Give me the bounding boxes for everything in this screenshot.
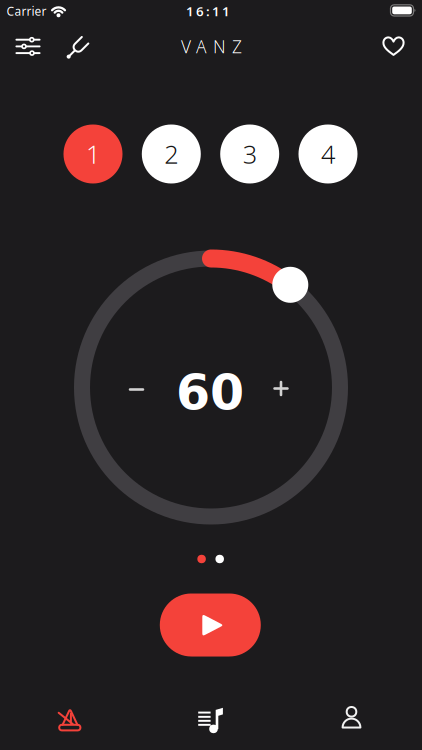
staticText: 1 <box>86 137 100 171</box>
button[interactable]: Songs <box>196 705 224 733</box>
staticText: VANZ <box>181 35 242 58</box>
button[interactable]: 2 <box>142 124 201 183</box>
button[interactable]: Play <box>160 593 261 656</box>
button[interactable]: Metronome <box>56 706 83 733</box>
staticText: 60 <box>176 364 244 421</box>
button[interactable]: Decrease tempo <box>119 372 153 406</box>
staticText: 4 <box>321 137 335 171</box>
button[interactable]: Increase tempo <box>264 371 298 405</box>
button[interactable]: 3 <box>220 124 279 183</box>
button[interactable]: Settings <box>15 33 41 59</box>
button[interactable]: Tuner <box>61 34 91 64</box>
staticText: 3 <box>243 137 257 171</box>
staticText: Carrier <box>6 3 46 19</box>
button[interactable]: Profile <box>338 706 365 733</box>
staticText: 2 <box>164 137 178 171</box>
button[interactable]: 4 <box>298 124 357 183</box>
staticText: 16:11 <box>186 2 230 20</box>
button[interactable]: 1 <box>63 124 122 183</box>
button[interactable]: Favorites <box>382 36 404 57</box>
